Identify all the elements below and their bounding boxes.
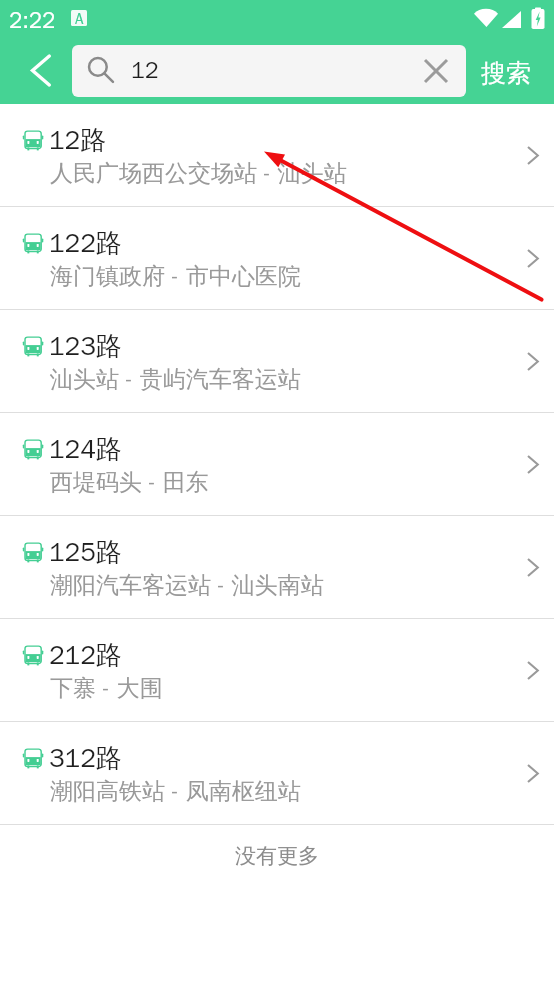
staticText: 人民广场西公交场站 - 汕头站 bbox=[50, 159, 347, 188]
button[interactable]: 124路 bbox=[0, 413, 554, 515]
staticText: 潮阳汽车客运站 - 汕头南站 bbox=[50, 571, 324, 600]
staticText: 12 bbox=[131, 56, 159, 85]
staticText: 没有更多 bbox=[235, 843, 319, 869]
staticText: A bbox=[75, 10, 84, 26]
button[interactable]: 122路 bbox=[0, 207, 554, 309]
staticText: 125路 bbox=[49, 536, 122, 569]
staticText: 西堤码头 - 田东 bbox=[50, 468, 209, 497]
staticText: 312路 bbox=[49, 742, 122, 775]
staticText: 下寨 - 大围 bbox=[50, 674, 163, 703]
other: Search bbox=[88, 57, 114, 83]
button[interactable]: 212路 bbox=[0, 619, 554, 721]
staticText: 海门镇政府 - 市中心医院 bbox=[50, 262, 301, 291]
staticText: 12路 bbox=[49, 124, 107, 157]
button[interactable]: 搜索 bbox=[466, 40, 554, 104]
staticText: 123路 bbox=[49, 330, 122, 363]
button[interactable]: 12路 bbox=[0, 104, 554, 206]
staticText: 122路 bbox=[49, 227, 122, 260]
staticText: 2:22 bbox=[9, 7, 56, 35]
staticText: 汕头站 - 贵屿汽车客运站 bbox=[50, 365, 301, 394]
staticText: 搜索 bbox=[481, 58, 531, 89]
staticText: 124路 bbox=[49, 433, 122, 466]
button[interactable]: 125路 bbox=[0, 516, 554, 618]
button[interactable]: 312路 bbox=[0, 722, 554, 824]
staticText: 212路 bbox=[49, 639, 122, 672]
button[interactable]: Clear search bbox=[419, 54, 453, 88]
button[interactable]: Search bbox=[72, 45, 466, 97]
staticText: 潮阳高铁站 - 凤南枢纽站 bbox=[50, 777, 301, 806]
button[interactable]: 123路 bbox=[0, 310, 554, 412]
button[interactable]: Back bbox=[0, 40, 72, 104]
